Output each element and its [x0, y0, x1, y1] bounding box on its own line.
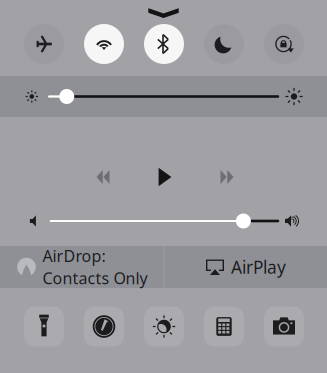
- button[interactable]: Rewind: [75, 155, 131, 199]
- button[interactable]: Play: [136, 155, 192, 199]
- button[interactable]: [204, 24, 244, 64]
- button[interactable]: Calculator: [204, 306, 244, 346]
- button[interactable]: Flashlight: [24, 306, 64, 346]
- button[interactable]: [24, 24, 64, 64]
- button[interactable]: Timer: [84, 306, 124, 346]
- button[interactable]: Camera: [264, 306, 304, 346]
- button[interactable]: [264, 24, 304, 64]
- button[interactable]: [84, 24, 124, 64]
- staticText: AirDrop:: [42, 245, 105, 266]
- staticText: Contacts Only: [42, 267, 147, 289]
- button[interactable]: [144, 24, 184, 64]
- button[interactable]: Fast forward: [199, 155, 255, 199]
- button[interactable]: AirPlay: [164, 246, 327, 288]
- staticText: AirPlay: [231, 255, 286, 278]
- button[interactable]: Night Shift: [144, 306, 184, 346]
- button[interactable]: AirDrop:: [0, 246, 163, 288]
